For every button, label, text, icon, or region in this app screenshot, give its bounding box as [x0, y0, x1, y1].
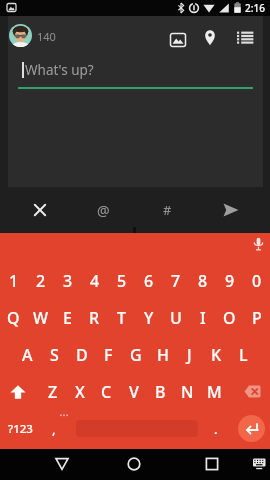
staticText: 2: [36, 270, 46, 292]
button[interactable]: 5: [108, 262, 135, 299]
button[interactable]: A: [14, 336, 41, 373]
button[interactable]: E: [54, 299, 81, 336]
button[interactable]: V: [120, 373, 147, 410]
staticText: P: [252, 307, 262, 329]
button[interactable]: [234, 449, 270, 480]
staticText: W: [33, 307, 49, 329]
staticText: C: [101, 381, 112, 403]
button[interactable]: ?123: [0, 410, 40, 447]
staticText: O: [223, 307, 236, 329]
button[interactable]: L: [230, 336, 256, 373]
button[interactable]: N: [174, 373, 201, 410]
staticText: ?123: [8, 421, 33, 437]
button[interactable]: [8, 187, 71, 233]
button[interactable]: Q: [0, 299, 27, 336]
button[interactable]: [9, 24, 32, 47]
staticText: L: [239, 344, 248, 366]
button[interactable]: J: [176, 336, 203, 373]
button[interactable]: 1: [0, 262, 27, 299]
staticText: S: [50, 344, 59, 366]
staticText: 4: [90, 270, 100, 292]
button[interactable]: 8: [189, 262, 216, 299]
staticText: E: [63, 307, 72, 329]
button[interactable]: W: [27, 299, 54, 336]
staticText: #: [163, 201, 172, 219]
button[interactable]: [156, 449, 234, 480]
button[interactable]: [0, 373, 39, 410]
staticText: H: [157, 344, 169, 366]
staticText: What's up?: [25, 61, 94, 79]
button[interactable]: P: [243, 299, 270, 336]
button[interactable]: 6: [135, 262, 162, 299]
staticText: 2:16: [245, 1, 265, 15]
button[interactable]: [224, 410, 270, 447]
staticText: B: [155, 381, 166, 403]
button[interactable]: H: [149, 336, 176, 373]
staticText: 6: [144, 270, 154, 292]
button[interactable]: @: [71, 187, 135, 233]
staticText: Y: [144, 307, 154, 329]
button[interactable]: T: [108, 299, 135, 336]
staticText: 9: [225, 270, 235, 292]
staticText: Z: [48, 381, 58, 403]
button[interactable]: U: [162, 299, 189, 336]
staticText: A: [22, 344, 33, 366]
staticText: 1: [9, 270, 19, 292]
staticText: 140: [37, 29, 56, 44]
button[interactable]: G: [122, 336, 149, 373]
button[interactable]: F: [95, 336, 122, 373]
button[interactable]: I: [189, 299, 216, 336]
button[interactable]: K: [203, 336, 230, 373]
staticText: F: [104, 344, 113, 366]
button[interactable]: M: [201, 373, 228, 410]
staticText: I: [200, 307, 206, 329]
staticText: ,: [52, 420, 56, 438]
staticText: @: [97, 201, 110, 220]
staticText: N: [181, 381, 194, 403]
button[interactable]: [78, 449, 156, 480]
button[interactable]: O: [216, 299, 243, 336]
button[interactable]: 2: [27, 262, 54, 299]
staticText: X: [75, 381, 85, 403]
button[interactable]: X: [66, 373, 93, 410]
staticText: 5: [117, 270, 127, 292]
button[interactable]: Y: [135, 299, 162, 336]
button[interactable]: [253, 237, 264, 253]
button[interactable]: [0, 449, 78, 480]
staticText: 3: [63, 270, 73, 292]
button[interactable]: R: [81, 299, 108, 336]
button[interactable]: [204, 29, 216, 46]
staticText: D: [76, 344, 88, 366]
button[interactable]: 7: [162, 262, 189, 299]
staticText: 8: [198, 270, 208, 292]
button[interactable]: 9: [216, 262, 243, 299]
staticText: K: [211, 344, 222, 366]
button[interactable]: #: [135, 187, 199, 233]
button[interactable]: [228, 373, 270, 410]
staticText: 7: [171, 270, 181, 292]
button[interactable]: B: [147, 373, 174, 410]
button[interactable]: [237, 31, 254, 44]
button[interactable]: 3: [54, 262, 81, 299]
staticText: V: [129, 381, 139, 403]
button[interactable]: D: [68, 336, 95, 373]
staticText: T: [117, 307, 126, 329]
button[interactable]: C: [93, 373, 120, 410]
staticText: G: [130, 344, 142, 366]
staticText: Q: [7, 307, 20, 329]
staticText: R: [89, 307, 100, 329]
button[interactable]: 4: [81, 262, 108, 299]
staticText: .: [214, 420, 218, 438]
staticText: 0: [252, 270, 262, 292]
button[interactable]: S: [41, 336, 68, 373]
button[interactable]: .: [207, 410, 224, 447]
button[interactable]: [199, 187, 263, 233]
button[interactable]: ,: [40, 410, 67, 447]
button[interactable]: Z: [39, 373, 66, 410]
button[interactable]: [67, 410, 207, 447]
button[interactable]: [170, 33, 186, 47]
staticText: U: [170, 307, 182, 329]
staticText: J: [187, 344, 192, 366]
button[interactable]: 0: [243, 262, 270, 299]
